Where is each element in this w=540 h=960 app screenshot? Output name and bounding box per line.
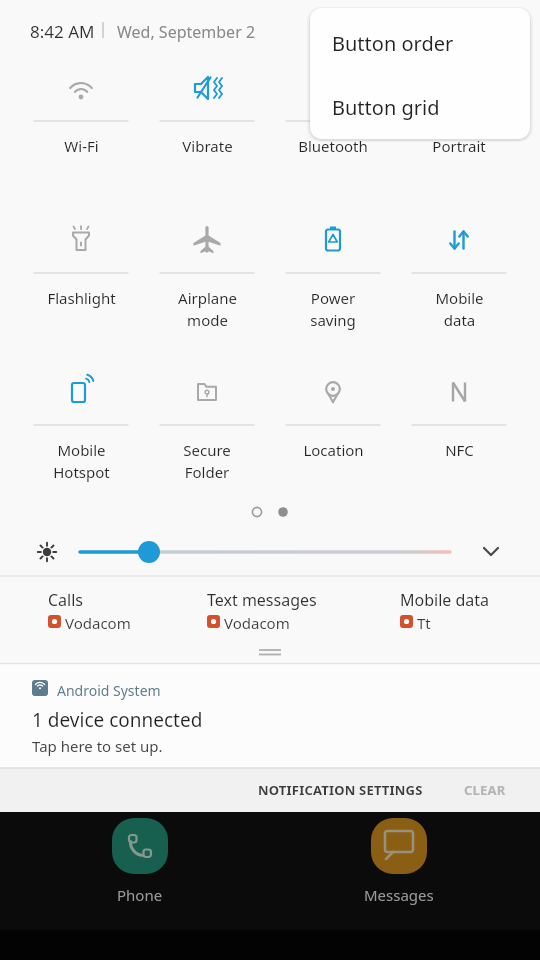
staticText: Mobile data <box>400 589 490 611</box>
staticText: Android System <box>57 681 161 700</box>
button[interactable] <box>371 818 427 874</box>
button[interactable] <box>112 818 168 874</box>
staticText: Text messages <box>207 589 317 611</box>
button[interactable] <box>396 56 522 208</box>
button[interactable] <box>270 56 396 208</box>
button[interactable]: Android System <box>0 664 540 768</box>
button[interactable] <box>396 360 522 512</box>
staticText: Bluetooth <box>298 136 368 156</box>
button[interactable] <box>270 208 396 360</box>
staticText: Messages <box>364 885 434 905</box>
staticText: Vodacom <box>65 613 131 633</box>
staticText: Tap here to set up. <box>32 736 163 756</box>
staticText: Secure Folder <box>183 440 231 483</box>
staticText: CLEAR <box>464 781 506 799</box>
button[interactable] <box>70 530 470 574</box>
staticText: NFC <box>445 440 474 460</box>
staticText: Button order <box>332 30 454 57</box>
button[interactable] <box>144 56 270 208</box>
staticText: Wed, September 2 <box>117 21 256 43</box>
button[interactable] <box>18 208 144 360</box>
button[interactable]: Button order <box>310 8 530 74</box>
staticText: Vodacom <box>224 613 290 633</box>
button[interactable] <box>144 360 270 512</box>
staticText: Power saving <box>310 288 356 331</box>
staticText: Airplane mode <box>178 288 237 331</box>
button[interactable]: Button grid <box>310 74 530 139</box>
button[interactable] <box>18 56 144 208</box>
staticText: Flashlight <box>47 288 116 308</box>
staticText: Vibrate <box>182 136 233 156</box>
staticText: Mobile Hotspot <box>53 440 110 483</box>
staticText: 1 device connected <box>32 707 203 733</box>
button[interactable] <box>396 208 522 360</box>
staticText: Location <box>303 440 364 460</box>
staticText: NOTIFICATION SETTINGS <box>258 781 423 799</box>
staticText: Tt <box>417 613 431 633</box>
staticText: Calls <box>48 589 84 611</box>
staticText: 8:42 AM <box>30 20 95 43</box>
button[interactable] <box>472 532 512 572</box>
staticText: Button grid <box>332 94 440 121</box>
staticText: Portrait <box>432 136 486 156</box>
staticText: Phone <box>117 885 163 905</box>
button[interactable] <box>18 360 144 512</box>
button[interactable] <box>144 208 270 360</box>
button[interactable]: CLEAR <box>450 768 520 812</box>
staticText: Mobile data <box>435 288 484 331</box>
staticText: Wi-Fi <box>64 136 99 156</box>
button[interactable] <box>270 360 396 512</box>
button[interactable]: NOTIFICATION SETTINGS <box>240 768 440 812</box>
